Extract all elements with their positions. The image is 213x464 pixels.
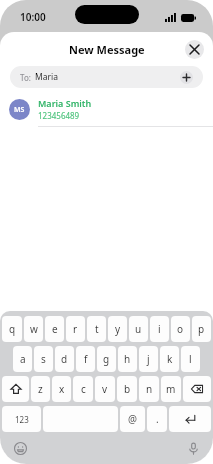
button[interactable]: h — [118, 346, 137, 372]
staticText: To: — [20, 72, 31, 83]
button[interactable]: Backspace — [183, 376, 211, 402]
button[interactable]: w — [24, 316, 43, 342]
button[interactable]: q — [2, 316, 22, 342]
button[interactable]: v — [95, 376, 115, 402]
staticText: h — [124, 352, 131, 366]
staticText: k — [167, 352, 173, 366]
staticText: 10:00 — [20, 10, 46, 24]
button[interactable]: k — [160, 346, 179, 372]
button[interactable]: MS — [0, 92, 213, 127]
button[interactable]: g — [97, 346, 116, 372]
staticText: g — [103, 352, 110, 366]
staticText: i — [158, 322, 161, 336]
staticText: r — [73, 322, 78, 336]
staticText: y — [115, 322, 121, 336]
button[interactable]: s — [34, 346, 53, 372]
button[interactable]: To: — [10, 66, 203, 88]
staticText: s — [41, 352, 46, 366]
staticText: d — [61, 352, 68, 366]
button[interactable]: d — [55, 346, 74, 372]
button[interactable]: Voice input — [185, 440, 201, 456]
button[interactable]: b — [117, 376, 137, 402]
staticText: u — [135, 322, 142, 336]
staticText: m — [166, 382, 176, 396]
button[interactable]: Close — [185, 40, 204, 59]
staticText: x — [59, 382, 65, 396]
staticText: o — [177, 322, 184, 336]
button[interactable]: m — [161, 376, 181, 402]
button[interactable]: Enter — [169, 406, 211, 432]
button[interactable]: z — [31, 376, 50, 402]
button[interactable]: e — [45, 316, 64, 342]
button[interactable]: @ — [120, 406, 145, 432]
staticText: v — [102, 382, 108, 396]
staticText: z — [38, 382, 43, 396]
staticText: New Message — [69, 42, 145, 57]
button[interactable]: i — [150, 316, 169, 342]
staticText: q — [9, 322, 16, 336]
staticText: a — [20, 352, 26, 366]
staticText: . — [156, 412, 159, 426]
button[interactable]: c — [73, 376, 93, 402]
staticText: c — [81, 382, 86, 396]
button[interactable]: a — [13, 346, 32, 372]
button[interactable]: l — [181, 346, 200, 372]
button[interactable]: x — [52, 376, 71, 402]
staticText: @ — [128, 412, 137, 426]
staticText: e — [52, 322, 58, 336]
staticText: t — [95, 322, 99, 336]
staticText: j — [147, 352, 150, 366]
staticText: n — [146, 382, 153, 396]
button[interactable]: u — [129, 316, 148, 342]
staticText: p — [198, 322, 205, 336]
button[interactable]: Shift — [2, 376, 29, 402]
button[interactable]: Emoji — [12, 440, 28, 456]
staticText: b — [124, 382, 131, 396]
button[interactable]: 123 — [2, 406, 41, 432]
staticText: f — [84, 352, 88, 366]
button[interactable]: p — [192, 316, 211, 342]
staticText: 123 — [15, 414, 29, 425]
button[interactable]: r — [66, 316, 85, 342]
staticText: w — [30, 322, 38, 336]
button[interactable]: Add contact — [180, 71, 193, 84]
button[interactable]: t — [87, 316, 106, 342]
button[interactable]: . — [147, 406, 167, 432]
staticText: MS — [14, 105, 25, 115]
button[interactable]: n — [139, 376, 159, 402]
staticText: l — [189, 352, 192, 366]
staticText: Maria — [35, 71, 58, 83]
button[interactable]: f — [76, 346, 95, 372]
button[interactable]: o — [171, 316, 190, 342]
button[interactable]: y — [108, 316, 127, 342]
staticText: 123456489 — [38, 110, 80, 121]
button[interactable]: j — [139, 346, 158, 372]
staticText: Maria Smith — [38, 97, 92, 109]
